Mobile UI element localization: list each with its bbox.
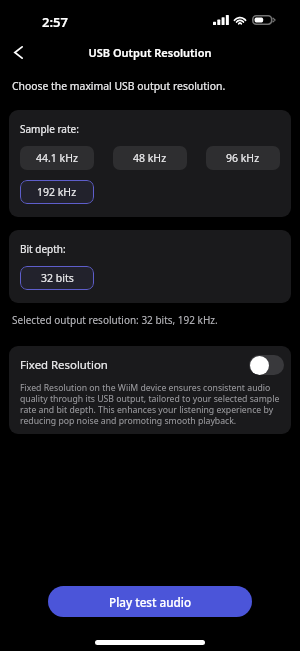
- button[interactable]: 44.1 kHz: [20, 146, 94, 170]
- button[interactable]: Fixed Resolution toggle: [249, 355, 284, 375]
- button[interactable]: 48 kHz: [113, 146, 187, 170]
- staticText: Fixed Resolution: [20, 357, 245, 373]
- staticText: Choose the maximal USB output resolution…: [12, 79, 226, 93]
- staticText: 44.1 kHz: [36, 151, 78, 165]
- staticText: Play test audio: [109, 594, 192, 610]
- staticText: 192 kHz: [37, 185, 77, 199]
- button[interactable]: 32 bits: [20, 266, 94, 290]
- staticText: 48 kHz: [133, 151, 167, 165]
- staticText: Bit depth:: [20, 242, 66, 256]
- button[interactable]: 192 kHz: [20, 180, 94, 204]
- button[interactable]: Play test audio: [48, 586, 252, 617]
- button[interactable]: Fixed Resolution: [20, 355, 280, 375]
- button[interactable]: Back: [4, 38, 32, 66]
- button[interactable]: 96 kHz: [206, 146, 280, 170]
- staticText: Sample rate:: [20, 122, 79, 136]
- staticText: USB Output Resolution: [0, 45, 300, 60]
- staticText: Fixed Resolution on the WiiM device ensu…: [20, 382, 280, 427]
- staticText: 32 bits: [41, 271, 74, 285]
- staticText: 2:57: [42, 13, 68, 31]
- staticText: 96 kHz: [226, 151, 260, 165]
- staticText: Selected output resolution: 32 bits, 192…: [12, 313, 218, 327]
